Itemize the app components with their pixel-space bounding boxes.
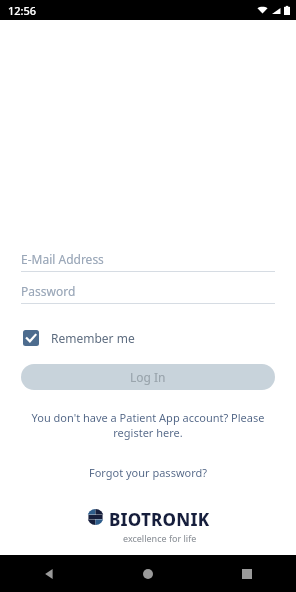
button[interactable]: Recent apps: [197, 555, 296, 592]
staticText: Log In: [130, 369, 166, 385]
staticText: Password: [21, 283, 76, 299]
button[interactable]: Password: [21, 282, 275, 300]
staticText: 12:56: [8, 3, 37, 18]
button[interactable]: E-Mail Address: [21, 250, 275, 268]
staticText: E-Mail Address: [21, 251, 104, 267]
button[interactable]: Back: [0, 555, 98, 592]
staticText: You don't have a Patient App account? Pl…: [28, 410, 268, 440]
staticText: excellence for life: [123, 532, 197, 544]
staticText: Forgot your password?: [0, 465, 296, 480]
button[interactable]: Log In: [21, 364, 275, 390]
button[interactable]: Remember me: [21, 326, 137, 350]
button[interactable]: Forgot your password?: [0, 463, 296, 482]
button[interactable]: Home: [98, 555, 197, 592]
staticText: BIOTRONIK: [109, 508, 210, 531]
staticText: Remember me: [51, 330, 135, 346]
button[interactable]: You don't have a Patient App account? Pl…: [0, 408, 296, 442]
